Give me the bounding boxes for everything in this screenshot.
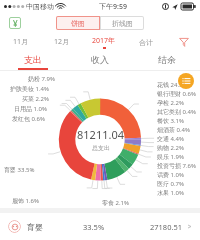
staticText: 奶粉 7.9% — [28, 75, 56, 83]
button[interactable]: 2017年 — [83, 33, 125, 51]
staticText: ¥ — [13, 18, 18, 29]
button[interactable]: Filter — [167, 33, 200, 51]
staticText: 话费 1.0% — [157, 171, 185, 179]
staticText: 12月 — [54, 37, 70, 47]
staticText: 11月 — [13, 37, 29, 47]
button[interactable]: 支出 — [0, 51, 66, 70]
staticText: 餐饮 3.1% — [157, 117, 185, 125]
button[interactable]: 饼图 — [56, 16, 100, 30]
staticText: 饼图 — [71, 19, 85, 28]
staticText: 81211.04 — [77, 127, 124, 142]
staticText: 折线图 — [112, 19, 133, 28]
staticText: 育婴 — [27, 222, 43, 232]
staticText: 发红包 0.6% — [12, 115, 46, 123]
button[interactable]: 收入 — [66, 51, 133, 70]
staticText: 医疗 0.7% — [157, 180, 185, 188]
staticText: 服饰 1.6% — [12, 197, 40, 205]
staticText: 总支出 — [92, 144, 110, 152]
button[interactable]: 折线图 — [100, 16, 144, 30]
button[interactable]: 12月 — [41, 33, 83, 51]
staticText: 中国移动 — [26, 2, 54, 11]
button[interactable]: 育婴 — [0, 213, 200, 240]
staticText: 烟酒茶 0.4% — [157, 126, 191, 134]
button[interactable]: 合计 — [125, 33, 167, 51]
staticText: 日用品 1.0% — [14, 105, 48, 113]
staticText: 投资亏损 7.6% — [157, 162, 197, 170]
staticText: 水果 1.0% — [157, 189, 185, 197]
staticText: 合计 — [139, 38, 153, 47]
staticText: 支出 — [24, 54, 42, 65]
staticText: 育婴 33.5% — [4, 166, 35, 174]
staticText: 其它类别 0.4% — [157, 108, 197, 116]
staticText: 护肤美妆 1.4% — [10, 85, 50, 93]
staticText: 27180.51 — [150, 222, 183, 232]
button[interactable]: 11月 — [0, 33, 41, 51]
staticText: 花钱 24.3% — [157, 81, 188, 89]
staticText: 收入 — [91, 54, 109, 65]
button[interactable]: 结余 — [133, 51, 200, 70]
staticText: 零食 2.1% — [102, 199, 130, 207]
staticText: 结余 — [158, 54, 176, 65]
button[interactable]: Account — [9, 17, 21, 29]
staticText: 买菜 2.2% — [22, 95, 50, 103]
staticText: 孕检 2.2% — [157, 99, 185, 107]
button[interactable]: List view — [178, 73, 194, 89]
staticText: 交通 4.4% — [157, 135, 185, 143]
staticText: 娱乐 1.9% — [157, 153, 185, 161]
staticText: 33.5% — [83, 222, 105, 232]
staticText: 购物 2.2% — [157, 144, 185, 152]
staticText: 银行理财 0.6% — [157, 90, 197, 98]
staticText: 下午9:59 — [99, 2, 127, 12]
staticText: 2017年 — [92, 36, 116, 46]
